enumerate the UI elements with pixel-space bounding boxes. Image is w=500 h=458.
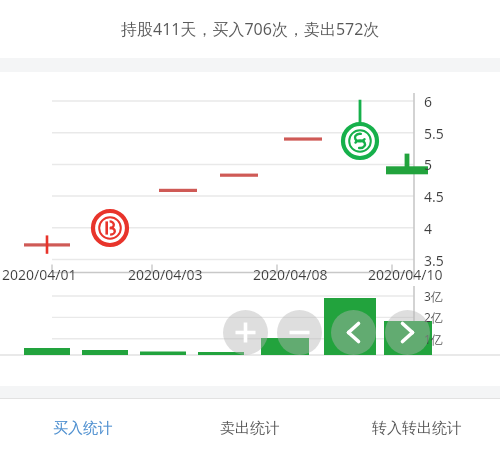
staticText: 2020/04/08 xyxy=(253,265,328,284)
staticText: 持股411天，买入706次，卖出572次 xyxy=(121,18,380,40)
staticText: 5.5 xyxy=(424,124,444,143)
staticText: 3.5 xyxy=(424,251,444,270)
staticText: 卖出统计 xyxy=(220,419,280,438)
staticText: 1亿 xyxy=(424,331,443,347)
button[interactable]: Scroll left xyxy=(331,310,376,355)
button[interactable]: Zoom out xyxy=(277,310,322,355)
button[interactable]: Scroll right xyxy=(385,310,430,355)
staticText: 5 xyxy=(424,155,433,174)
staticText: 买入统计 xyxy=(53,419,113,438)
staticText: 2亿 xyxy=(424,309,443,325)
staticText: 2020/04/01 xyxy=(2,265,77,284)
button[interactable]: 买入统计 xyxy=(0,399,166,458)
staticText: 2020/04/10 xyxy=(368,265,443,284)
button[interactable]: 卖出统计 xyxy=(166,399,333,458)
staticText: 3亿 xyxy=(424,288,443,304)
staticText: 4.5 xyxy=(424,187,444,206)
staticText: 6 xyxy=(424,92,433,111)
staticText: 2020/04/03 xyxy=(128,265,203,284)
staticText: 转入转出统计 xyxy=(372,419,462,438)
button[interactable]: 转入转出统计 xyxy=(333,399,500,458)
staticText: 4 xyxy=(424,219,433,238)
button[interactable]: Zoom in xyxy=(223,310,268,355)
